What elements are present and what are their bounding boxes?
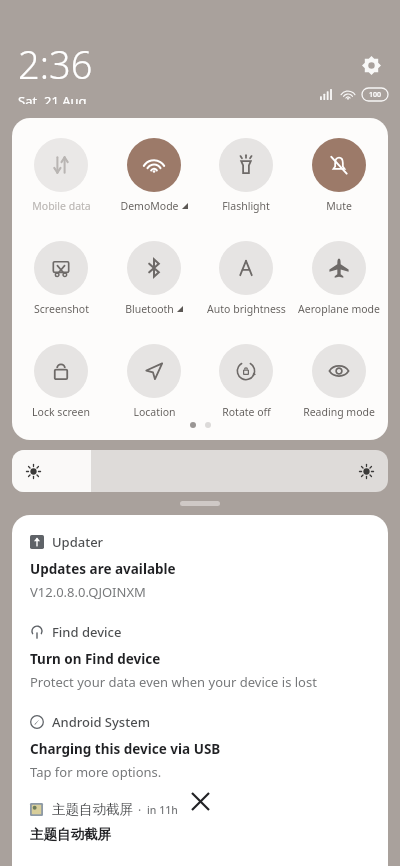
staticText: Flashlight [222,199,270,213]
staticText: Location [133,405,176,419]
staticText: Updater [52,533,104,551]
staticText: · [138,802,142,818]
button[interactable]: Bluetooth [110,239,198,318]
staticText: Mute [326,199,352,213]
staticText: Turn on Find device [30,650,161,668]
button[interactable]: Mute [295,136,383,215]
staticText: 2:36 [18,38,93,90]
button[interactable]: Close [177,778,223,824]
staticText: V12.0.8.0.QJOINXM [30,583,146,601]
staticText: Reading mode [303,405,375,419]
staticText: Charging this device via USB [30,740,221,758]
staticText: Find device [52,623,122,641]
staticText: in 11h [147,803,178,817]
staticText: Lock screen [32,405,90,419]
staticText: Protect your data even when your device … [30,673,317,691]
staticText: 主题自动截屏 [52,801,133,818]
button[interactable]: Auto brightness [202,239,290,318]
button[interactable]: Location [110,342,198,421]
button[interactable]: Mobile data [17,136,105,215]
staticText: Tap for more options. [30,763,162,781]
staticText: Mobile data [32,199,91,213]
button[interactable]: DemoMode [110,136,198,215]
staticText: Aeroplane mode [298,302,380,316]
staticText: Updates are available [30,560,176,578]
staticText: 主题自动截屏 [30,826,111,843]
button[interactable]: Flashlight [202,136,290,215]
button[interactable]: Reading mode [295,342,383,421]
staticText: Bluetooth [125,302,174,316]
button[interactable] [12,450,388,492]
staticText: Screenshot [34,302,89,316]
button[interactable]: Lock screen [17,342,105,421]
staticText: 100 [369,90,382,100]
button[interactable]: Aeroplane mode [295,239,383,318]
staticText: Sat, 21 Aug [18,92,87,104]
staticText: Auto brightness [207,302,286,316]
button[interactable]: Settings [356,50,386,80]
staticText: DemoMode [120,199,179,213]
button[interactable]: Screenshot [17,239,105,318]
staticText: Rotate off [222,405,271,419]
button[interactable]: Rotate off [202,342,290,421]
staticText: Android System [52,713,150,731]
